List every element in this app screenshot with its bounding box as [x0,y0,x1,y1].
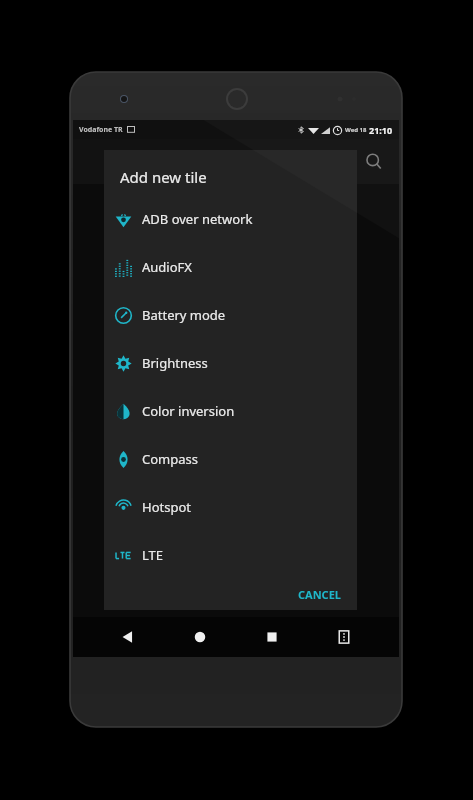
button[interactable]: AudioFX [104,243,357,291]
button[interactable]: Compass [104,435,357,483]
button[interactable]: Menu [327,620,361,654]
button[interactable]: Battery mode [104,291,357,339]
staticText: CANCEL [298,587,341,602]
staticText: Wed 18 [345,126,367,134]
staticText: ADB over network [142,210,253,228]
button[interactable]: Color inversion [104,387,357,435]
staticText: LTE [142,546,164,564]
button[interactable]: Back [99,149,125,175]
button[interactable]: Back [111,620,145,654]
staticText: AudioFX [142,258,192,276]
button[interactable]: Hotspot [104,483,357,531]
button[interactable]: Recents [255,620,289,654]
staticText: Add new tile [120,167,207,187]
button[interactable]: Home [183,620,217,654]
button[interactable]: CANCEL [298,587,341,602]
button[interactable]: Search [361,149,387,175]
button[interactable]: Brightness [104,339,357,387]
staticText: Color inversion [142,402,235,420]
staticText: Brightness [142,354,208,372]
staticText: Vodafone TR [79,125,123,135]
staticText: Hotspot [142,498,191,516]
button[interactable]: ADB over network [104,195,357,243]
staticText: Compass [142,450,198,468]
staticText: Battery mode [142,306,226,324]
button[interactable]: LTE [104,531,357,579]
staticText: 21:10 [369,124,393,136]
